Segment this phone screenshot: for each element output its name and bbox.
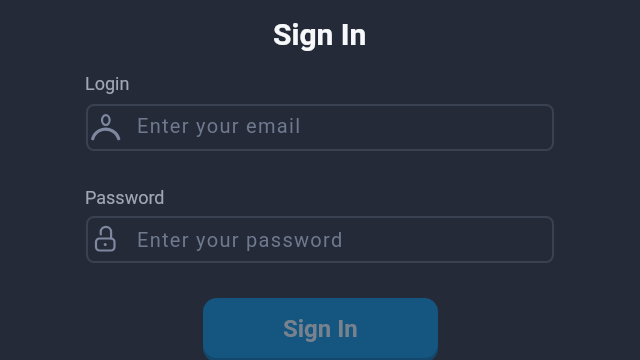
button[interactable]: Sign In (203, 298, 438, 358)
button[interactable] (86, 216, 554, 263)
staticText: Enter your password (137, 228, 344, 251)
staticText: Password (85, 187, 165, 208)
staticText: Login (85, 73, 130, 94)
staticText: Sign In (273, 17, 367, 52)
staticText: Enter your email (137, 114, 302, 137)
staticText: Sign In (283, 315, 358, 343)
button[interactable] (86, 104, 554, 151)
